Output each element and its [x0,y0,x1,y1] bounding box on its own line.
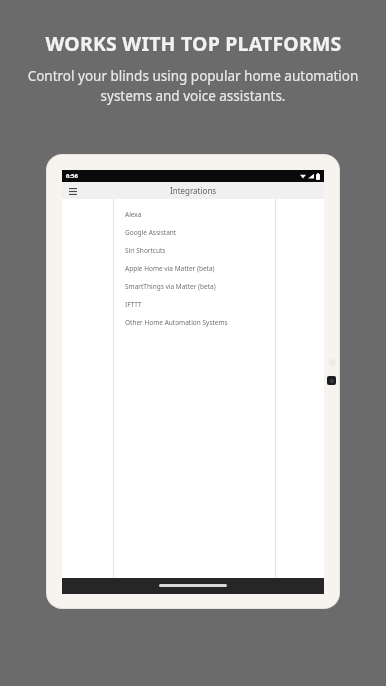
staticText: Integrations [170,185,217,196]
button[interactable]: IFTTT [114,295,275,313]
staticText: Siri Shortcuts [125,246,166,255]
button[interactable]: Alexa [114,205,275,223]
staticText: WORKS WITH TOP PLATFORMS [45,30,342,57]
staticText: Other Home Automation Systems [125,318,228,327]
button[interactable]: Siri Shortcuts [114,241,275,259]
staticText: IFTTT [125,300,142,309]
button[interactable]: SmartThings via Matter (beta) [114,277,275,295]
staticText: SmartThings via Matter (beta) [125,282,216,291]
button[interactable]: Other Home Automation Systems [114,313,275,331]
staticText: 6:56 [66,172,78,180]
button[interactable]: Apple Home via Matter (beta) [114,259,275,277]
staticText: Control your blinds using popular home a… [16,67,370,105]
staticText: Google Assistant [125,228,177,237]
button[interactable]: Open navigation menu [66,184,80,198]
button[interactable]: Google Assistant [114,223,275,241]
staticText: Apple Home via Matter (beta) [125,264,215,273]
staticText: Alexa [125,210,142,219]
